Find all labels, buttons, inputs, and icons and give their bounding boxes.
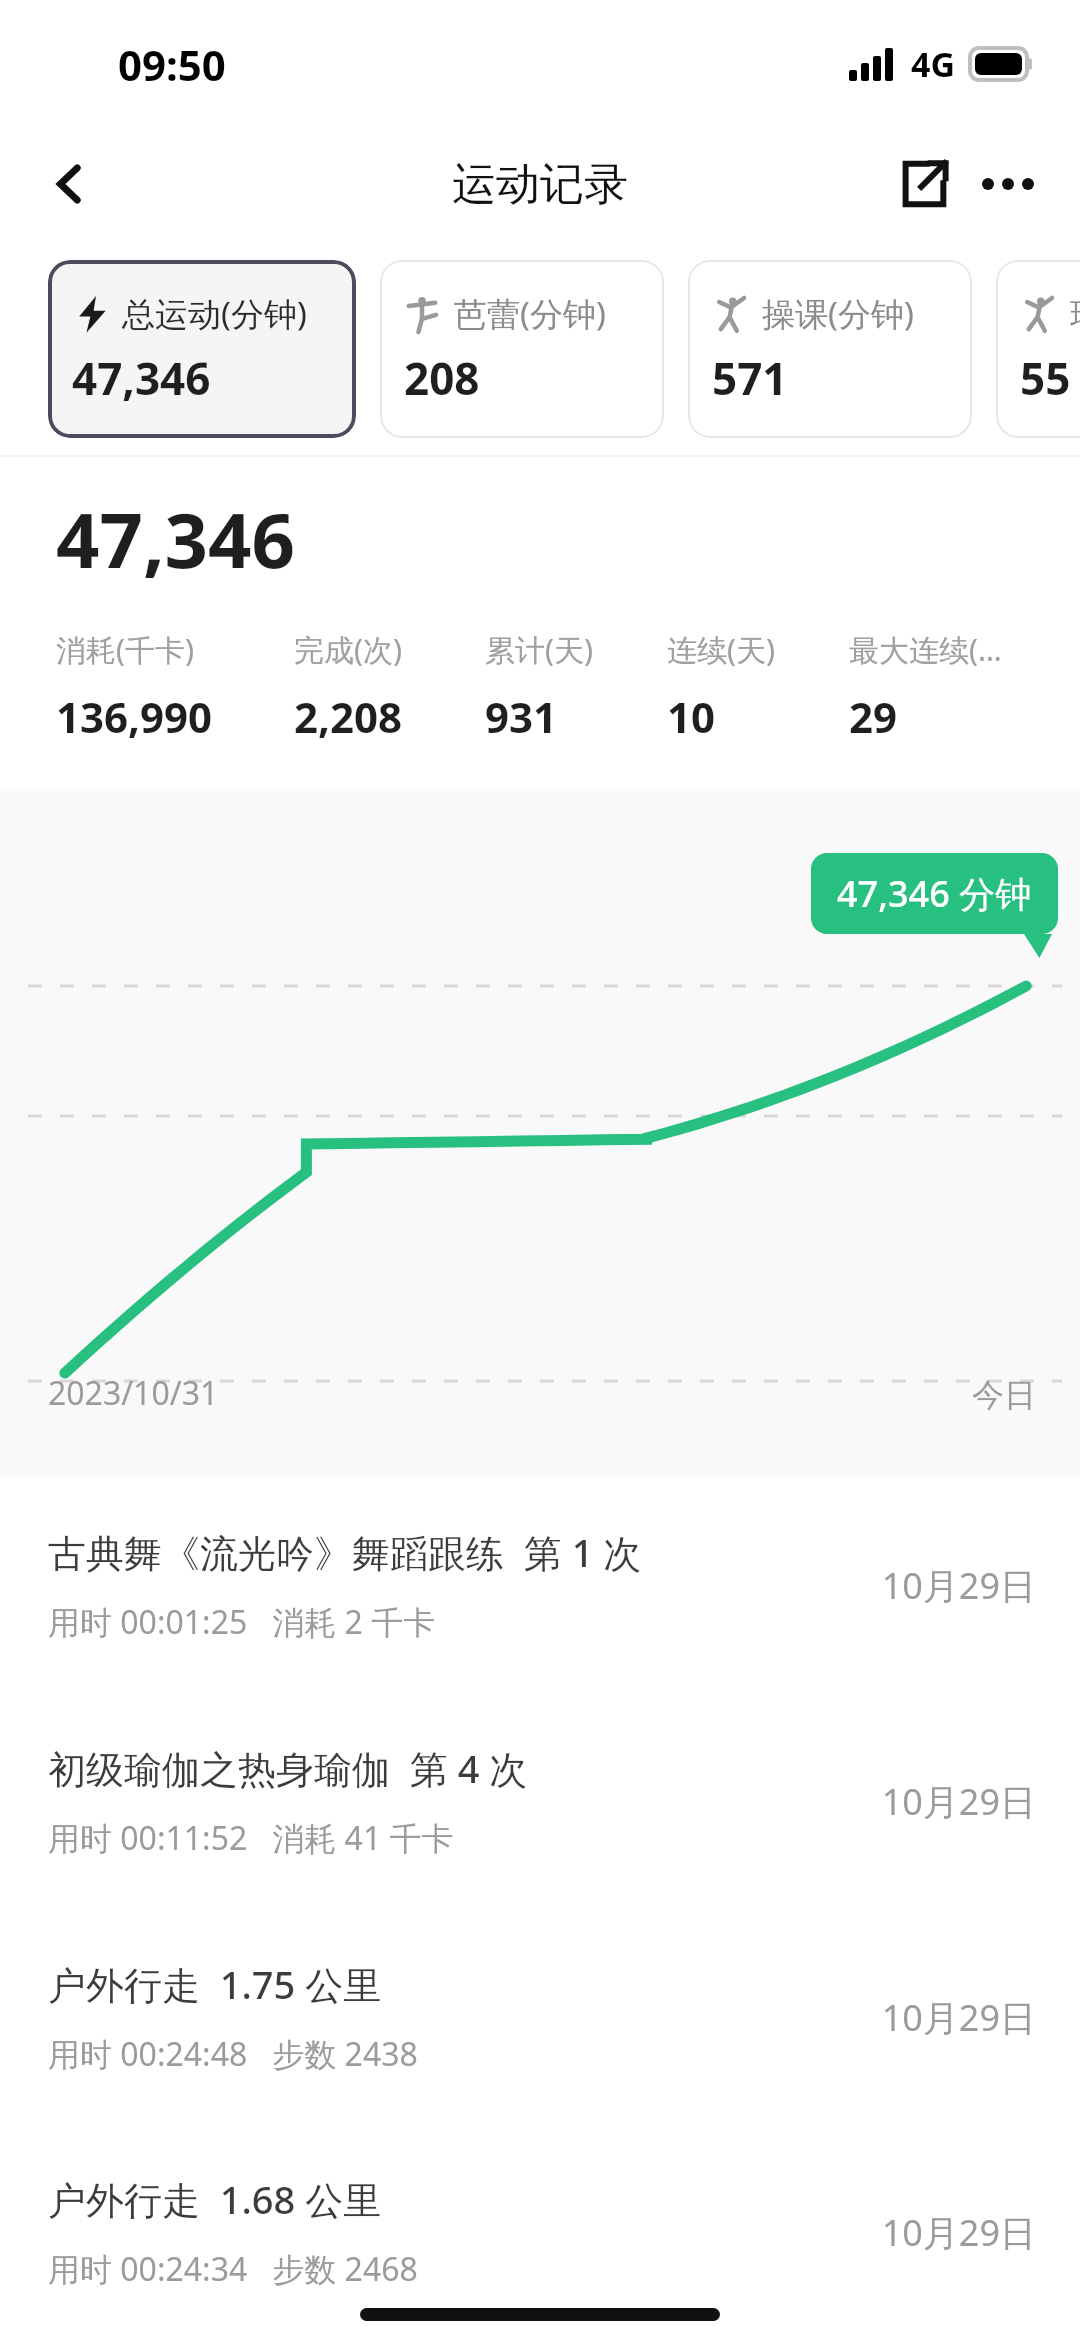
button[interactable]: 初级瑜伽之热身瑜伽 第 4 次: [0, 1693, 1080, 1909]
staticText: 用时 00:11:52 消耗 41 千卡: [48, 1816, 454, 1860]
staticText: 初级瑜伽之热身瑜伽 第 4 次: [48, 1742, 528, 1794]
staticText: 完成(次): [294, 629, 402, 670]
button[interactable]: Back: [28, 142, 112, 226]
staticText: 2,208: [294, 688, 403, 745]
button[interactable]: 户外行走 1.68 公里: [0, 2125, 1080, 2339]
staticText: 芭蕾(分钟): [454, 291, 606, 336]
staticText: 累计(天): [485, 629, 593, 670]
staticText: 用时 00:01:25 消耗 2 千卡: [48, 1600, 436, 1644]
staticText: 连续(天): [667, 629, 775, 670]
staticText: 操课(分钟): [762, 291, 914, 336]
staticText: 47,346 分钟: [837, 869, 1032, 918]
staticText: 10月29日: [881, 1993, 1036, 2042]
staticText: 931: [485, 688, 558, 745]
staticText: 10月29日: [881, 1777, 1036, 1826]
staticText: 用时 00:24:34 步数 2468: [48, 2247, 418, 2291]
staticText: 瑜伽(分钟): [1070, 291, 1080, 336]
button[interactable]: 瑜伽(分钟): [996, 260, 1080, 438]
staticText: 消耗(千卡): [56, 629, 194, 670]
staticText: 208: [404, 348, 480, 408]
staticText: 55: [1020, 348, 1071, 408]
button[interactable]: Share: [882, 142, 966, 226]
button[interactable]: 古典舞《流光吟》舞蹈跟练 第 1 次: [0, 1477, 1080, 1693]
staticText: 户外行走 1.75 公里: [48, 1958, 382, 2010]
staticText: 136,990: [56, 688, 213, 745]
button[interactable]: 户外行走 1.75 公里: [0, 1909, 1080, 2125]
staticText: 09:50: [118, 36, 226, 93]
staticText: 2023/10/31: [48, 1371, 219, 1415]
staticText: 571: [712, 348, 788, 408]
staticText: 古典舞《流光吟》舞蹈跟练 第 1 次: [48, 1526, 642, 1578]
staticText: 47,346: [56, 487, 296, 591]
staticText: 总运动(分钟): [122, 291, 307, 336]
staticText: 10月29日: [881, 2208, 1036, 2257]
staticText: 户外行走 1.68 公里: [48, 2173, 382, 2225]
staticText: 运动记录: [452, 157, 628, 212]
button[interactable]: 芭蕾(分钟): [380, 260, 664, 438]
staticText: 29: [849, 688, 898, 745]
button[interactable]: More options: [966, 142, 1050, 226]
staticText: 10月29日: [881, 1561, 1036, 1610]
staticText: 用时 00:24:48 步数 2438: [48, 2032, 418, 2076]
staticText: 最大连续(…: [849, 629, 1002, 670]
staticText: 4G: [911, 41, 956, 87]
button[interactable]: 操课(分钟): [688, 260, 972, 438]
button[interactable]: 总运动(分钟): [48, 260, 356, 438]
staticText: 47,346: [72, 348, 211, 408]
staticText: 10: [667, 688, 716, 745]
staticText: 今日: [972, 1375, 1036, 1415]
